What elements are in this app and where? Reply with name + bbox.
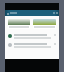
button[interactable] [8,19,30,29]
button[interactable] [33,19,56,29]
button[interactable]: Menu [6,12,9,15]
button[interactable]: More options [6,33,58,41]
button[interactable]: More options [6,42,58,50]
